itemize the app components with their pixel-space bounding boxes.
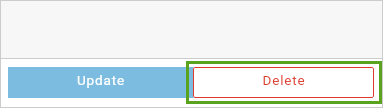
staticText: Delete: [262, 72, 306, 88]
other: Highlight: [186, 61, 382, 104]
staticText: Update: [77, 72, 125, 88]
button[interactable]: Update: [8, 67, 194, 98]
button[interactable]: Delete: [193, 67, 374, 98]
